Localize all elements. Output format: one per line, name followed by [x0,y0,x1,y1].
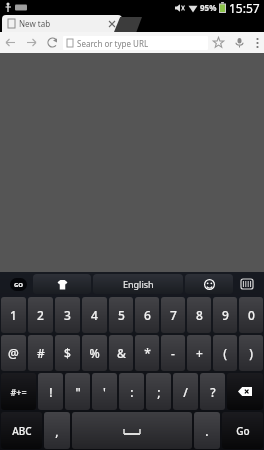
staticText: - [171,345,175,361]
button[interactable]: More options [250,32,264,53]
staticText: + [196,345,203,361]
staticText: ! [49,384,53,400]
staticText: % [89,345,100,361]
staticText: ? [210,384,216,400]
button[interactable]: , [44,412,70,449]
staticText: 15:57 [229,0,260,15]
button[interactable]: Backspace [227,373,263,410]
button[interactable]: Bookmark [208,32,229,53]
staticText: # [37,345,45,361]
button[interactable]: GO keyboard menu [3,274,33,294]
staticText: 6 [144,307,151,323]
staticText: 2 [37,307,44,323]
staticText: English [123,278,154,290]
button[interactable]: 2 [28,297,53,333]
button[interactable]: Keyboard settings [233,274,261,294]
button[interactable]: . [194,412,220,449]
staticText: Search or type URL [77,38,149,49]
button[interactable]: New tab [114,15,142,32]
button[interactable]: ! [38,373,63,410]
staticText: 8 [196,307,203,323]
button[interactable]: Voice search [229,32,250,53]
button[interactable]: # [28,335,53,371]
button[interactable]: English [93,274,183,294]
staticText: 4 [91,307,98,323]
button[interactable]: " [65,373,90,410]
button[interactable]: & [109,335,133,371]
button[interactable]: 6 [135,297,159,333]
button[interactable]: Close tab [106,18,118,30]
staticText: ; [157,384,161,400]
button[interactable]: * [135,335,159,371]
staticText: ) [249,345,253,361]
staticText: #+= [10,386,27,398]
button[interactable]: Go [222,412,263,449]
button[interactable]: ) [239,335,263,371]
staticText: * [144,345,151,361]
button[interactable]: Back [0,32,21,53]
staticText: 3 [64,307,71,323]
staticText: New tab [19,18,51,29]
button[interactable]: 0 [239,297,263,333]
staticText: ' [103,384,106,400]
button[interactable]: ? [200,373,225,410]
button[interactable]: New tab [2,15,122,32]
staticText: " [75,384,81,400]
button[interactable]: 7 [161,297,185,333]
staticText: ( [223,345,227,361]
button[interactable]: 3 [55,297,80,333]
staticText: ABC [12,424,32,438]
button[interactable]: @ [1,335,26,371]
staticText: . [205,423,209,439]
staticText: Go [236,424,250,438]
button[interactable]: #+= [1,373,36,410]
staticText: GO [14,281,24,289]
staticText: , [55,423,59,439]
staticText: & [117,345,126,361]
staticText: @ [8,345,19,361]
staticText: 1 [10,307,17,323]
button[interactable]: Forward [21,32,42,53]
staticText: 0 [248,307,255,323]
button[interactable]: / [173,373,198,410]
button[interactable]: $ [55,335,80,371]
staticText: 9 [222,307,229,323]
button[interactable]: + [187,335,211,371]
button[interactable]: ' [92,373,117,410]
button[interactable]: % [82,335,107,371]
button[interactable]: : [119,373,144,410]
button[interactable]: Space [72,412,192,449]
button[interactable]: Search or type URL [63,36,208,50]
button[interactable]: Reload [42,32,63,53]
staticText: / [183,384,188,400]
button[interactable]: 8 [187,297,211,333]
button[interactable]: 1 [1,297,26,333]
button[interactable]: Emoji [185,274,233,294]
button[interactable]: ; [146,373,171,410]
staticText: : [130,384,134,400]
staticText: $ [64,345,71,361]
button[interactable]: 4 [82,297,107,333]
button[interactable]: ABC [1,412,42,449]
staticText: 5 [118,307,125,323]
staticText: 7 [170,307,177,323]
button[interactable]: - [161,335,185,371]
staticText: 95% [200,2,217,13]
button[interactable]: Theme [33,274,91,294]
button[interactable]: 5 [109,297,133,333]
button[interactable]: 9 [213,297,237,333]
button[interactable]: ( [213,335,237,371]
